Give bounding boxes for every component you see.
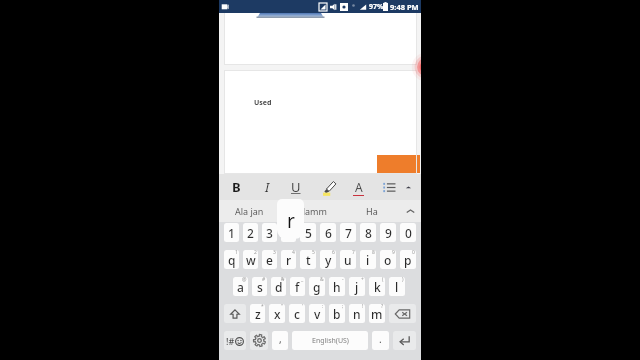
button[interactable]: 8 <box>360 223 376 242</box>
staticText: g <box>313 279 321 295</box>
staticText: n <box>353 306 361 322</box>
staticText: 4 <box>285 225 292 241</box>
button[interactable]: y <box>320 250 336 269</box>
staticText: ; <box>342 304 344 310</box>
staticText: o <box>384 252 392 268</box>
staticText: @ <box>242 277 247 283</box>
button[interactable] <box>377 155 420 173</box>
button[interactable]: Collapse toolbar <box>395 174 421 200</box>
button[interactable]: j <box>349 277 365 296</box>
button[interactable]: Backspace <box>389 304 416 323</box>
staticText: i <box>366 252 370 268</box>
button[interactable]: 9 <box>380 223 396 242</box>
button[interactable]: c <box>289 304 305 323</box>
button[interactable]: w <box>243 250 258 269</box>
button[interactable]: 6 <box>320 223 336 242</box>
button[interactable]: Alamm <box>280 200 343 222</box>
button[interactable]: Bulleted list <box>376 174 402 200</box>
staticText: & <box>320 277 324 283</box>
staticText: p <box>404 252 412 268</box>
button[interactable]: e <box>262 250 277 269</box>
staticText: " <box>281 304 284 310</box>
button[interactable]: , <box>272 331 288 350</box>
staticText: 8 <box>372 250 375 256</box>
staticText: m <box>371 306 383 322</box>
button[interactable]: 2 <box>243 223 258 242</box>
staticText: _ <box>301 277 304 283</box>
staticText: y <box>325 252 332 268</box>
staticText: Ha <box>366 205 378 217</box>
button[interactable]: f <box>290 277 305 296</box>
staticText: 97% <box>369 2 384 12</box>
button[interactable]: English(US) <box>292 331 368 350</box>
staticText: . <box>379 332 382 346</box>
button[interactable]: Highlight <box>316 174 342 200</box>
staticText: e <box>266 252 273 268</box>
staticText: h <box>333 279 341 295</box>
button[interactable]: Ala jan <box>219 200 280 222</box>
button[interactable]: m <box>369 304 385 323</box>
button[interactable]: b <box>329 304 345 323</box>
staticText: t <box>306 252 311 268</box>
button[interactable]: 3 <box>262 223 277 242</box>
button[interactable]: o <box>380 250 396 269</box>
button[interactable]: x <box>269 304 285 323</box>
staticText: : <box>322 304 324 310</box>
staticText: ( <box>382 277 384 283</box>
button[interactable]: 4 <box>281 223 296 242</box>
button[interactable]: z <box>250 304 265 323</box>
staticText: l <box>395 279 399 295</box>
staticText: Alamm <box>297 205 327 217</box>
button[interactable]: l <box>389 277 405 296</box>
staticText: 0 <box>405 225 412 241</box>
staticText: 4 <box>292 250 295 256</box>
button[interactable]: g <box>309 277 325 296</box>
staticText: U <box>291 178 301 196</box>
button[interactable]: i <box>360 250 376 269</box>
button[interactable]: r <box>281 250 296 269</box>
staticText: - <box>342 277 344 283</box>
staticText: w <box>246 252 256 268</box>
staticText: !# <box>226 335 235 347</box>
staticText: * <box>261 304 264 310</box>
button[interactable]: n <box>349 304 365 323</box>
staticText: Ala jan <box>235 205 264 217</box>
staticText: b <box>333 306 341 322</box>
button[interactable]: 5 <box>300 223 316 242</box>
button[interactable]: Shift <box>224 304 246 323</box>
button[interactable]: k <box>369 277 385 296</box>
button[interactable]: Expand suggestions <box>400 200 421 222</box>
button[interactable]: a <box>233 277 248 296</box>
button[interactable]: Text colour <box>345 174 371 200</box>
button[interactable]: Underline <box>283 174 309 200</box>
staticText: ) <box>402 277 404 283</box>
button[interactable]: 0 <box>400 223 416 242</box>
button[interactable]: d <box>271 277 286 296</box>
staticText: 9:48 PM <box>390 2 419 12</box>
button[interactable]: Symbols and emoji <box>224 331 246 350</box>
staticText: 6 <box>332 250 335 256</box>
staticText: 7 <box>345 225 352 241</box>
button[interactable]: u <box>340 250 356 269</box>
button[interactable]: Italic <box>254 174 280 200</box>
button[interactable]: p <box>400 250 416 269</box>
button[interactable]: Enter <box>393 331 416 350</box>
button[interactable]: h <box>329 277 345 296</box>
button[interactable]: 1 <box>224 223 239 242</box>
staticText: x <box>274 306 281 322</box>
button[interactable]: v <box>309 304 325 323</box>
button[interactable]: Ha <box>343 200 400 222</box>
staticText: u <box>344 252 352 268</box>
staticText: 3 <box>266 225 273 241</box>
staticText: a <box>237 279 244 295</box>
button[interactable]: . <box>372 331 389 350</box>
button[interactable]: Settings <box>250 331 268 350</box>
staticText: f <box>295 279 300 295</box>
button[interactable]: q <box>224 250 239 269</box>
button[interactable]: 7 <box>340 223 356 242</box>
button[interactable]: t <box>300 250 316 269</box>
staticText: 0 <box>412 250 415 256</box>
button[interactable]: Bold <box>223 174 249 200</box>
staticText: 3 <box>273 250 276 256</box>
button[interactable]: s <box>252 277 267 296</box>
